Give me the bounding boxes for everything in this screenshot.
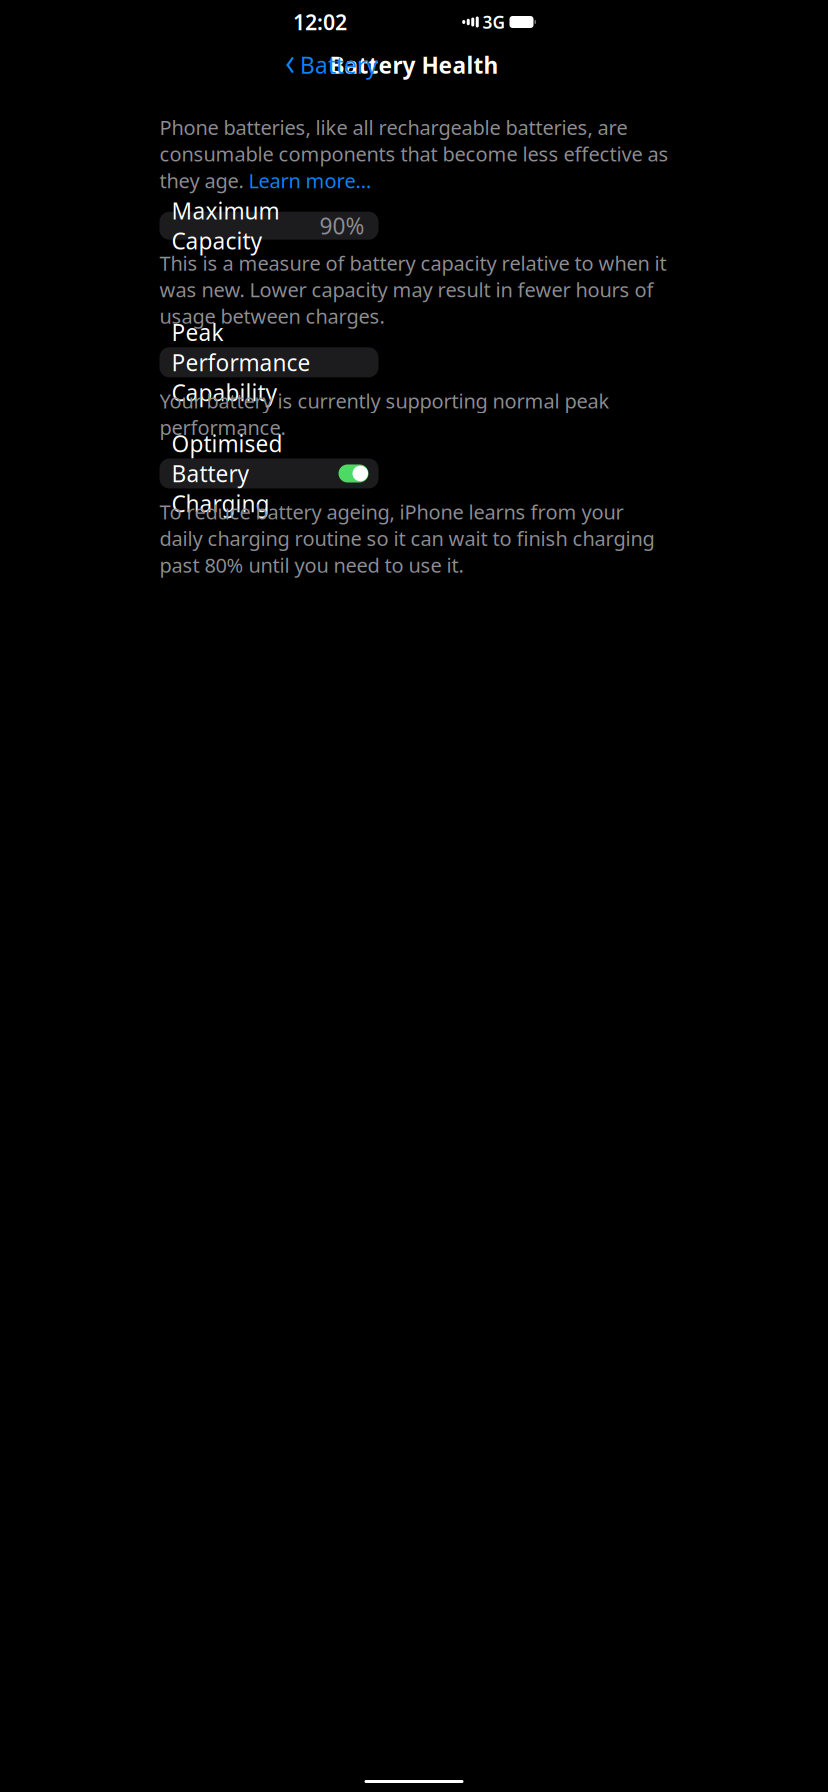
staticText: usage between charges. bbox=[159, 303, 384, 329]
staticText: Battery Health bbox=[329, 50, 498, 80]
staticText: Optimised Battery Charging bbox=[171, 428, 282, 519]
staticText: consumable components that become less e… bbox=[159, 141, 668, 167]
staticText: 90% bbox=[319, 211, 364, 241]
staticText: Your battery is currently supporting nor… bbox=[159, 387, 609, 414]
staticText: was new. Lower capacity may result in fe… bbox=[159, 276, 653, 303]
button[interactable]: Maximum Capacity bbox=[159, 212, 378, 240]
button[interactable]: Battery bbox=[276, 43, 386, 87]
staticText: 12:02 bbox=[293, 8, 347, 36]
staticText: Battery bbox=[300, 50, 378, 80]
button[interactable]: Optimised Battery Charging bbox=[159, 458, 378, 488]
staticText: daily charging routine so it can wait to… bbox=[159, 525, 654, 552]
staticText: Learn more… bbox=[248, 167, 371, 194]
staticText: past 80% until you need to use it. bbox=[159, 552, 463, 578]
staticText: they age. bbox=[159, 167, 248, 194]
staticText: performance. bbox=[159, 414, 285, 440]
button[interactable]: Learn more… bbox=[248, 167, 371, 194]
staticText: Peak Performance Capability bbox=[171, 317, 310, 407]
staticText: Maximum Capacity bbox=[171, 196, 279, 256]
staticText: To reduce battery ageing, iPhone learns … bbox=[159, 498, 623, 525]
staticText: This is a measure of battery capacity re… bbox=[159, 250, 666, 276]
staticText: 3G bbox=[482, 10, 505, 33]
button[interactable]: Peak Performance Capability bbox=[159, 347, 378, 377]
staticText: Phone batteries, like all rechargeable b… bbox=[159, 114, 627, 141]
